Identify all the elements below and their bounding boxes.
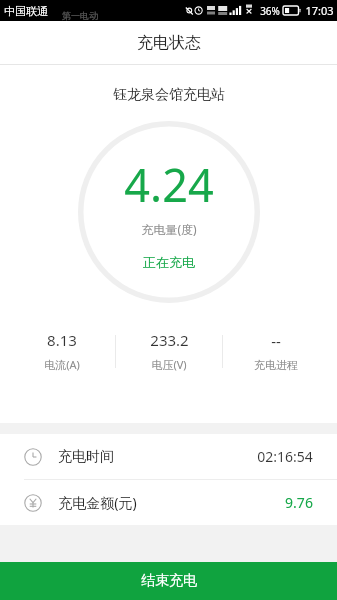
- staticText: 充电金额(元): [58, 493, 137, 512]
- staticText: 17:03: [305, 3, 334, 18]
- staticText: 4.24: [124, 154, 214, 215]
- other: Charging time: [24, 448, 42, 466]
- button[interactable]: 8.13: [8, 330, 115, 372]
- button[interactable]: Charging amount: [0, 480, 337, 525]
- staticText: 电流(A): [44, 357, 80, 372]
- staticText: 233.2: [150, 330, 189, 350]
- staticText: 充电量(度): [141, 221, 197, 237]
- button[interactable]: Charging time: [0, 434, 337, 479]
- button[interactable]: 结束充电: [0, 562, 337, 600]
- staticText: 正在充电: [143, 254, 195, 270]
- staticText: 电压(V): [151, 357, 187, 372]
- staticText: 第一电动: [62, 10, 98, 21]
- staticText: 钰龙泉会馆充电站: [113, 86, 225, 104]
- staticText: 结束充电: [141, 572, 197, 590]
- staticText: 9.76: [285, 493, 313, 512]
- staticText: 中国联通: [4, 4, 48, 18]
- staticText: 充电进程: [254, 358, 298, 372]
- staticText: 02:16:54: [257, 447, 313, 466]
- staticText: 8.13: [47, 330, 77, 350]
- staticText: 充电时间: [58, 448, 114, 466]
- button[interactable]: --: [223, 331, 329, 372]
- other: Charging amount: [24, 494, 42, 512]
- staticText: 充电状态: [137, 33, 201, 53]
- button[interactable]: 233.2: [116, 330, 222, 372]
- staticText: --: [271, 331, 281, 351]
- staticText: 36%: [260, 4, 280, 18]
